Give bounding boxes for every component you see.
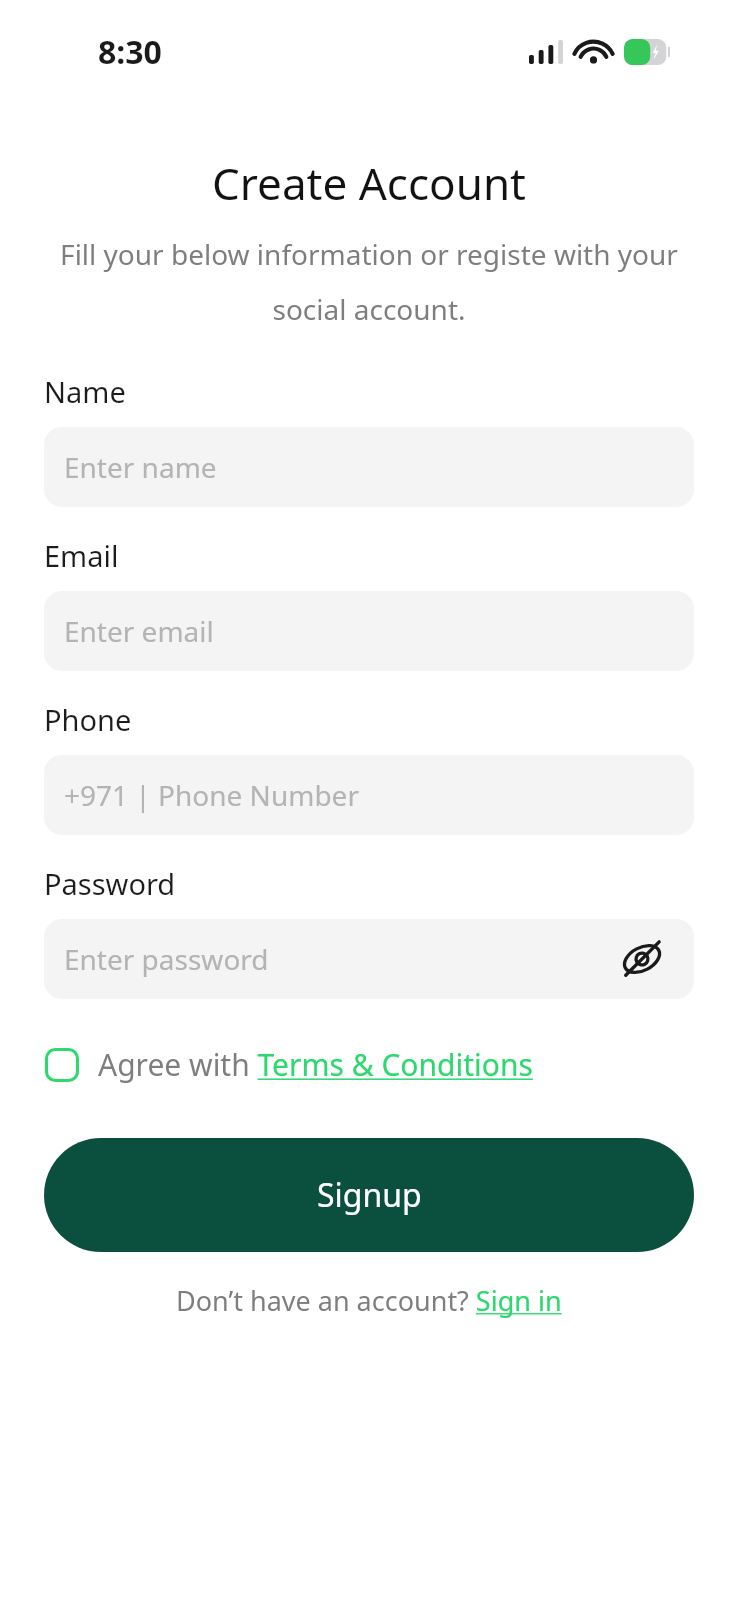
button[interactable]: Agree with Terms and Conditions [44,1047,80,1083]
staticText: Enter password [64,940,269,978]
staticText: Email [44,536,119,575]
staticText: Signup [317,1173,422,1217]
button[interactable]: Signup [44,1138,694,1252]
staticText: Enter email [64,612,214,650]
button[interactable]: Enter email [44,591,694,671]
button[interactable]: Enter name [44,427,694,507]
staticText: Fill your below information or registe w… [40,235,698,328]
button[interactable]: Show password [616,933,668,985]
staticText: 8:30 [98,30,162,74]
staticText: Password [44,864,176,903]
staticText: Agree with Terms & Conditions [98,1044,533,1085]
staticText: +971 | Phone Number [64,776,359,814]
staticText: Enter name [64,448,217,486]
staticText: Name [44,372,126,411]
staticText: Don’t have an account? Sign in [176,1282,562,1319]
button[interactable]: Don’t have an account? Sign in [168,1276,570,1325]
button[interactable]: +971 | Phone Number [44,755,694,835]
staticText: Phone [44,700,132,739]
staticText: Create Account [0,153,738,213]
button[interactable]: Enter password [44,919,694,999]
button[interactable]: Agree with Terms & Conditions [98,1044,533,1085]
